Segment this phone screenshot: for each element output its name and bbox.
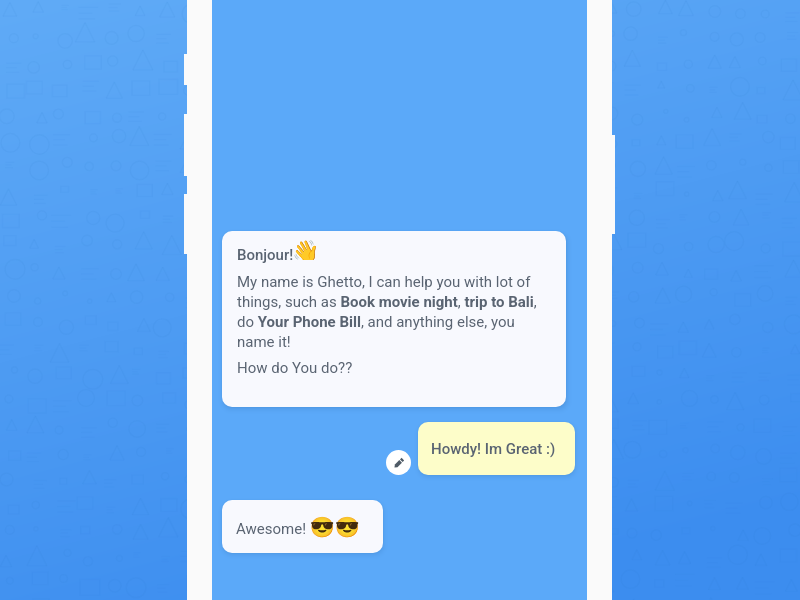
button[interactable]: Bonjour! bbox=[222, 231, 566, 407]
staticText: My name is Ghetto, I can help you with l… bbox=[237, 273, 542, 350]
staticText: Bonjour! bbox=[237, 246, 294, 264]
staticText: How do You do?? bbox=[237, 359, 353, 377]
button[interactable]: Edit message bbox=[386, 450, 411, 475]
staticText: Howdy! Im Great :) bbox=[431, 440, 556, 458]
staticText: 👋 bbox=[292, 239, 320, 260]
staticText: Awesome! 😎😎 bbox=[236, 515, 360, 538]
button[interactable]: Howdy! Im Great :) bbox=[418, 422, 575, 475]
button[interactable]: Awesome! 😎😎 bbox=[222, 500, 383, 553]
